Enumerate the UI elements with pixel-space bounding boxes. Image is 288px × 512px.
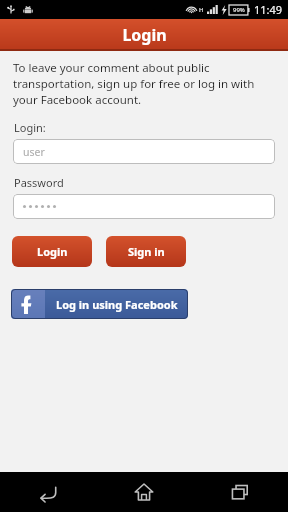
staticText: To leave your comment about public trans… [13,60,274,108]
button[interactable] [13,194,275,219]
staticText: Login [122,24,167,46]
button[interactable]: Back [0,472,96,512]
staticText: 11:49 [254,2,283,17]
button[interactable]: Recent apps [192,472,288,512]
staticText: Login: [14,120,46,135]
staticText: user [23,145,45,159]
button[interactable]: Home [96,472,192,512]
staticText: 99% [233,6,245,14]
button[interactable]: Login [12,236,92,267]
staticText: H [199,6,204,14]
button[interactable]: Log in using Facebook [11,289,188,319]
staticText: Sign in [128,244,165,259]
button[interactable]: user [13,139,275,164]
staticText: Login [37,244,68,259]
button[interactable]: Sign in [106,236,186,267]
staticText: Log in using Facebook [56,297,178,312]
staticText: Password [14,175,64,190]
